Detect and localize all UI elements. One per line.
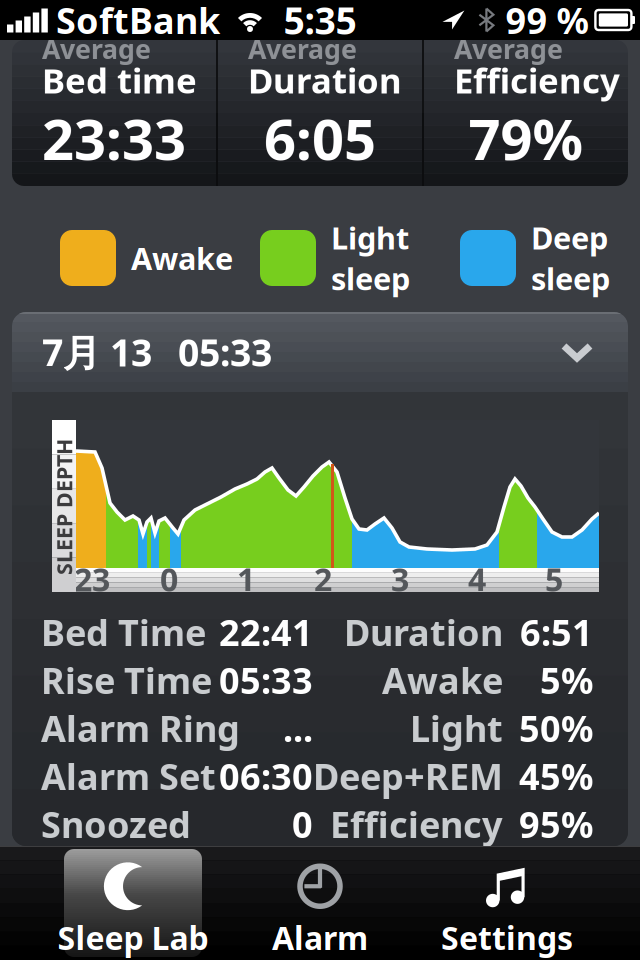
staticText: 6:05 <box>264 101 376 175</box>
staticText: SLEEP DEPTH <box>0 493 132 521</box>
staticText: Average <box>42 31 151 66</box>
staticText: 4 <box>468 558 486 600</box>
staticText: ... <box>283 704 313 752</box>
staticText: Bed time <box>42 57 197 103</box>
staticText: 05:33 <box>178 327 272 377</box>
staticText: Duration <box>248 57 402 103</box>
staticText: sleep <box>531 258 610 299</box>
staticText: 5 <box>545 558 563 600</box>
staticText: sleep <box>331 258 410 299</box>
staticText: 5:35 <box>283 0 356 45</box>
staticText: Alarm Ring <box>41 704 240 752</box>
staticText: Light <box>331 217 409 258</box>
staticText: Deep <box>531 217 608 258</box>
staticText: Sleep Lab <box>57 916 208 959</box>
button[interactable]: Alarm <box>226 847 413 959</box>
staticText: Efficiency <box>330 800 503 848</box>
staticText: 79% <box>468 101 583 175</box>
staticText: 0 <box>292 800 313 848</box>
staticText: Average <box>248 31 357 66</box>
staticText: Bed Time <box>41 608 206 656</box>
staticText: Light <box>410 704 503 752</box>
staticText: Average <box>454 31 563 66</box>
staticText: Rise Time <box>41 656 212 704</box>
staticText: 99 % <box>505 0 588 44</box>
staticText: Duration <box>344 608 503 656</box>
staticText: Deep+REM <box>313 752 503 800</box>
staticText: 1 <box>237 558 255 600</box>
staticText: Snoozed <box>41 800 191 848</box>
staticText: Alarm <box>272 916 368 959</box>
staticText: Settings <box>441 916 573 959</box>
staticText: Awake <box>382 656 503 704</box>
button[interactable]: 7月 13 <box>12 312 628 392</box>
staticText: Alarm Set <box>41 752 216 800</box>
staticText: 2 <box>314 558 332 600</box>
staticText: Awake <box>131 238 233 278</box>
staticText: 05:33 <box>219 656 313 704</box>
staticText: Efficiency <box>454 57 620 103</box>
staticText: 45% <box>519 752 593 800</box>
button[interactable]: Sleep Lab <box>39 847 226 959</box>
staticText: 23 <box>74 558 110 600</box>
staticText: 7月 13 <box>42 327 152 377</box>
staticText: 5% <box>540 656 593 704</box>
staticText: 50% <box>519 704 593 752</box>
staticText: 23:33 <box>42 101 186 175</box>
staticText: 3 <box>391 558 409 600</box>
staticText: SoftBank <box>56 0 220 44</box>
staticText: 06:30 <box>219 752 313 800</box>
staticText: 95% <box>519 800 593 848</box>
staticText: 6:51 <box>520 608 593 656</box>
button[interactable]: Settings <box>413 847 600 959</box>
staticText: 22:41 <box>219 608 313 656</box>
staticText: 0 <box>160 558 178 600</box>
